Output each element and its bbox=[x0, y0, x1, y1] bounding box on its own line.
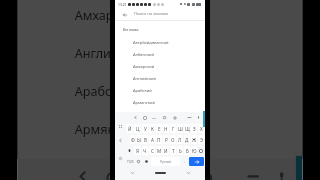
button[interactable]: Ж bbox=[191, 135, 197, 144]
button[interactable]: Амхарский bbox=[18, 0, 302, 33]
staticText: Н bbox=[164, 126, 168, 132]
button[interactable]: Ь bbox=[177, 146, 183, 155]
button[interactable]: У bbox=[142, 124, 148, 133]
button[interactable]: Н bbox=[163, 124, 169, 133]
button[interactable]: Г bbox=[170, 124, 176, 133]
button[interactable]: Английский bbox=[18, 33, 302, 70]
button[interactable]: GIF bbox=[128, 162, 150, 180]
button[interactable]: Настройки bbox=[171, 113, 178, 122]
button[interactable]: Б bbox=[184, 146, 190, 155]
staticText: 13:21 bbox=[118, 2, 127, 6]
button[interactable]: Ю bbox=[191, 146, 197, 155]
staticText: ?123 bbox=[127, 160, 134, 164]
staticText: Амхарский bbox=[133, 64, 155, 69]
button[interactable]: Ещё bbox=[186, 113, 193, 122]
button[interactable]: В bbox=[142, 135, 148, 144]
button[interactable]: Сдвинуть клавиатуру bbox=[117, 137, 124, 144]
button[interactable]: Назад bbox=[71, 162, 94, 180]
staticText: Азербайджанский bbox=[133, 40, 169, 45]
button[interactable]: П bbox=[156, 135, 162, 144]
staticText: Амхарский bbox=[75, 7, 144, 23]
button[interactable]: Й bbox=[126, 124, 133, 133]
button[interactable]: О bbox=[170, 135, 176, 144]
button[interactable]: Л bbox=[177, 135, 183, 144]
staticText: З bbox=[193, 126, 196, 132]
staticText: И bbox=[164, 148, 168, 154]
staticText: К bbox=[151, 126, 154, 132]
button[interactable]: Я bbox=[134, 146, 141, 155]
staticText: Армянский bbox=[133, 100, 155, 105]
staticText: Х bbox=[200, 126, 203, 132]
button[interactable]: Русский bbox=[151, 157, 180, 166]
button[interactable]: Ввод bbox=[189, 157, 204, 166]
button[interactable]: Голосовой ввод bbox=[271, 162, 293, 180]
button[interactable]: Эмодзи bbox=[135, 157, 142, 166]
button[interactable]: Х bbox=[198, 124, 204, 133]
staticText: Э bbox=[200, 137, 203, 143]
button[interactable]: Ф bbox=[130, 135, 135, 144]
button[interactable]: Буфер обмена bbox=[163, 162, 185, 180]
staticText: Ф bbox=[131, 137, 135, 143]
button[interactable]: Сменить язык bbox=[143, 157, 150, 166]
button[interactable]: Буфер обмена bbox=[161, 113, 168, 122]
button[interactable]: Армянский bbox=[115, 96, 205, 108]
button[interactable]: Ц bbox=[134, 124, 141, 133]
staticText: Русский bbox=[160, 160, 172, 164]
button[interactable]: Щ bbox=[184, 124, 190, 133]
button[interactable]: Армянский bbox=[18, 108, 302, 146]
button[interactable]: Ещё bbox=[242, 162, 264, 180]
button[interactable]: Главный экран bbox=[149, 168, 171, 177]
button[interactable]: Рукописный ввод bbox=[117, 155, 124, 162]
staticText: Щ bbox=[185, 126, 190, 132]
button[interactable]: Недавние приложения bbox=[181, 168, 195, 177]
button[interactable]: С bbox=[149, 146, 155, 155]
staticText: Л bbox=[178, 137, 182, 143]
staticText: Д bbox=[185, 137, 189, 143]
staticText: Английский bbox=[75, 45, 150, 61]
button[interactable]: Арабский bbox=[115, 84, 205, 96]
button[interactable]: GIF bbox=[150, 113, 157, 122]
button[interactable]: Т bbox=[170, 146, 176, 155]
button[interactable]: Регистр bbox=[126, 146, 133, 155]
button[interactable]: А bbox=[149, 135, 155, 144]
button[interactable]: Эмодзи bbox=[100, 162, 122, 180]
staticText: О bbox=[171, 137, 175, 143]
button[interactable]: Ш bbox=[177, 124, 183, 133]
button[interactable]: Настройки bbox=[195, 162, 217, 180]
staticText: Я bbox=[136, 148, 139, 154]
staticText: Т bbox=[172, 148, 175, 154]
button[interactable]: Назад bbox=[115, 8, 205, 20]
button[interactable]: Удалить bbox=[198, 146, 204, 155]
staticText: Ж bbox=[192, 137, 197, 143]
button[interactable]: Арабский bbox=[18, 70, 302, 108]
button[interactable]: И bbox=[163, 146, 169, 155]
button[interactable]: Назад bbox=[125, 168, 139, 177]
button[interactable]: ?123 bbox=[126, 157, 134, 166]
button[interactable]: Азербайджанский bbox=[115, 36, 205, 48]
button[interactable]: Изменить размер bbox=[117, 123, 124, 130]
staticText: Р bbox=[165, 137, 168, 143]
button[interactable]: Ч bbox=[142, 146, 148, 155]
button[interactable]: З bbox=[191, 124, 197, 133]
button[interactable]: Назад bbox=[121, 11, 128, 18]
button[interactable]: Э bbox=[198, 135, 204, 144]
button[interactable]: Английский bbox=[115, 72, 205, 84]
staticText: А bbox=[151, 137, 154, 143]
button[interactable]: Голосовой ввод bbox=[195, 113, 202, 122]
button[interactable]: Д bbox=[184, 135, 190, 144]
button[interactable]: Эмодзи bbox=[141, 113, 148, 122]
staticText: У bbox=[144, 126, 147, 132]
button[interactable]: Ы bbox=[136, 135, 141, 144]
button[interactable]: Назад bbox=[132, 113, 139, 122]
button[interactable]: Албанский bbox=[115, 48, 205, 60]
staticText: Албанский bbox=[133, 52, 155, 57]
button[interactable]: Е bbox=[156, 124, 162, 133]
staticText: GIF bbox=[152, 116, 156, 119]
button[interactable]: К bbox=[149, 124, 155, 133]
button[interactable]: М bbox=[156, 146, 162, 155]
staticText: Ш bbox=[178, 126, 183, 132]
button[interactable]: Р bbox=[163, 135, 169, 144]
button[interactable]: Амхарский bbox=[115, 60, 205, 72]
staticText: М bbox=[157, 148, 162, 154]
